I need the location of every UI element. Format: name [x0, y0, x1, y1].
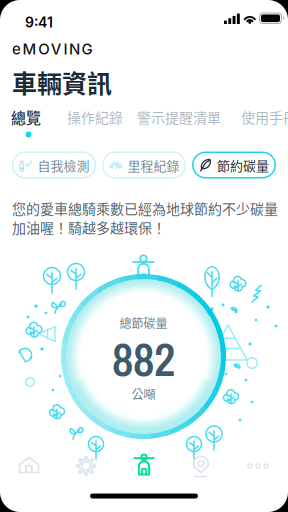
staticText: 總覽 [11, 106, 41, 128]
staticText: 882 [112, 327, 175, 391]
staticText: 自我檢測 [37, 156, 89, 174]
button[interactable]: 操作紀錄 [67, 105, 125, 129]
button[interactable]: More [232, 444, 284, 488]
button[interactable]: 節約碳量 [192, 151, 276, 178]
staticText: 節約碳量 [217, 156, 269, 174]
button[interactable]: 總覽 [11, 105, 47, 129]
staticText: eMOVING [12, 40, 93, 58]
staticText: 操作紀錄 [67, 107, 123, 127]
button[interactable]: Vehicle [118, 444, 170, 488]
staticText: 9:41 [25, 14, 53, 31]
button[interactable]: 自我檢測 [12, 151, 96, 178]
staticText: 總節碳量 [119, 314, 167, 332]
staticText: 加油喔！騎越多越環保！ [12, 217, 166, 237]
staticText: 里程紀錄 [127, 156, 179, 174]
button[interactable]: Home [3, 444, 55, 488]
staticText: 公噸 [131, 385, 155, 403]
button[interactable]: 使用手冊 [241, 105, 288, 129]
staticText: 使用手冊 [241, 107, 288, 127]
staticText: 車輛資訊 [12, 64, 112, 100]
button[interactable]: 警示提醒清單 [137, 105, 225, 129]
button[interactable]: Locations [175, 445, 227, 489]
button[interactable]: 里程紀錄 [102, 151, 186, 178]
staticText: 警示提醒清單 [137, 107, 221, 127]
staticText: 您的愛車總騎乘數已經為地球節約不少碳量 [12, 198, 278, 218]
button[interactable]: Settings [60, 444, 112, 488]
